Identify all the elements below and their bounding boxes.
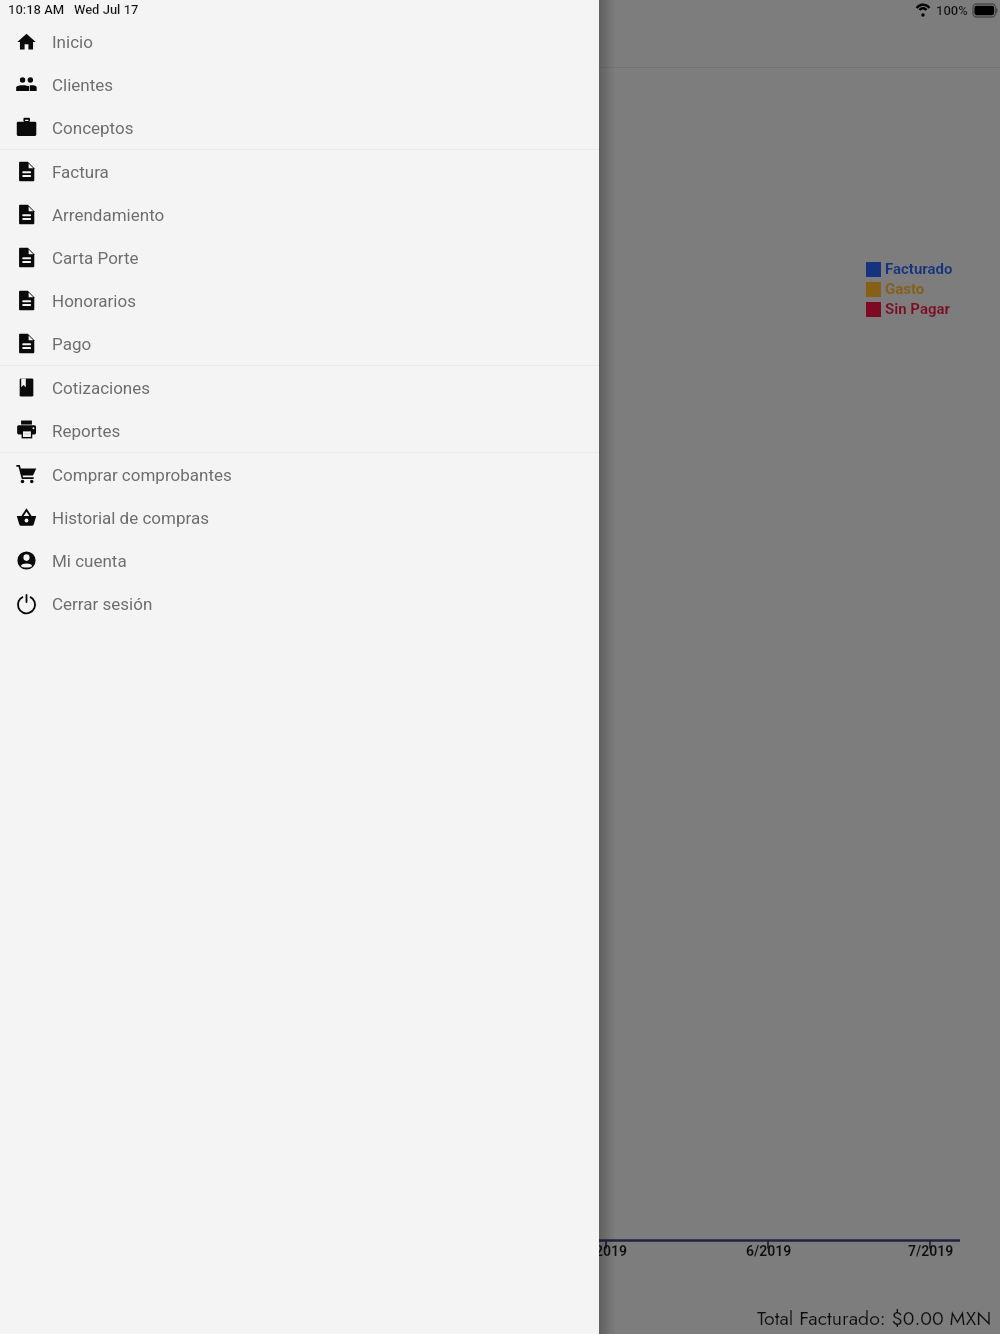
staticText: Honorarios — [52, 291, 136, 311]
staticText: Pago — [52, 334, 92, 354]
button[interactable]: Inicio — [0, 20, 599, 63]
staticText: Clientes — [52, 75, 114, 95]
staticText: Factura — [52, 162, 109, 182]
staticText: Historial de compras — [52, 508, 209, 528]
button[interactable]: Factura — [0, 150, 599, 193]
button[interactable]: Close navigation drawer — [0, 0, 1000, 1334]
staticText: Sin Pagar — [885, 300, 951, 318]
button[interactable]: Clientes — [0, 63, 599, 106]
staticText: Conceptos — [52, 118, 134, 138]
button[interactable]: Conceptos — [0, 106, 599, 149]
staticText: 6/2019 — [746, 1243, 792, 1259]
button[interactable]: Honorarios — [0, 279, 599, 322]
button[interactable]: Cotizaciones — [0, 366, 599, 409]
button[interactable]: Comprar comprobantes — [0, 453, 599, 496]
staticText: Inicio — [52, 32, 93, 52]
button[interactable]: Arrendamiento — [0, 193, 599, 236]
staticText: Facturado — [885, 260, 953, 278]
button[interactable]: Reportes — [0, 409, 599, 452]
button[interactable]: Historial de compras — [0, 496, 599, 539]
staticText: 100% — [936, 3, 968, 18]
staticText: Reportes — [52, 421, 121, 441]
button[interactable]: Mi cuenta — [0, 539, 599, 582]
staticText: Mi cuenta — [52, 551, 127, 571]
staticText: 7/2019 — [908, 1243, 954, 1259]
button[interactable]: Cerrar sesión — [0, 582, 599, 625]
staticText: Total Facturado: $0.00 MXN — [757, 1304, 992, 1332]
button[interactable]: Carta Porte — [0, 236, 599, 279]
staticText: 10:18 AM Wed Jul 17 — [8, 2, 139, 17]
button[interactable]: Pago — [0, 322, 599, 365]
staticText: Comprar comprobantes — [52, 465, 232, 485]
staticText: Cotizaciones — [52, 378, 151, 398]
staticText: Carta Porte — [52, 248, 139, 268]
staticText: Gasto — [885, 280, 925, 298]
staticText: Arrendamiento — [52, 205, 165, 225]
staticText: Cerrar sesión — [52, 594, 153, 614]
staticText: 2019 — [595, 1243, 628, 1259]
